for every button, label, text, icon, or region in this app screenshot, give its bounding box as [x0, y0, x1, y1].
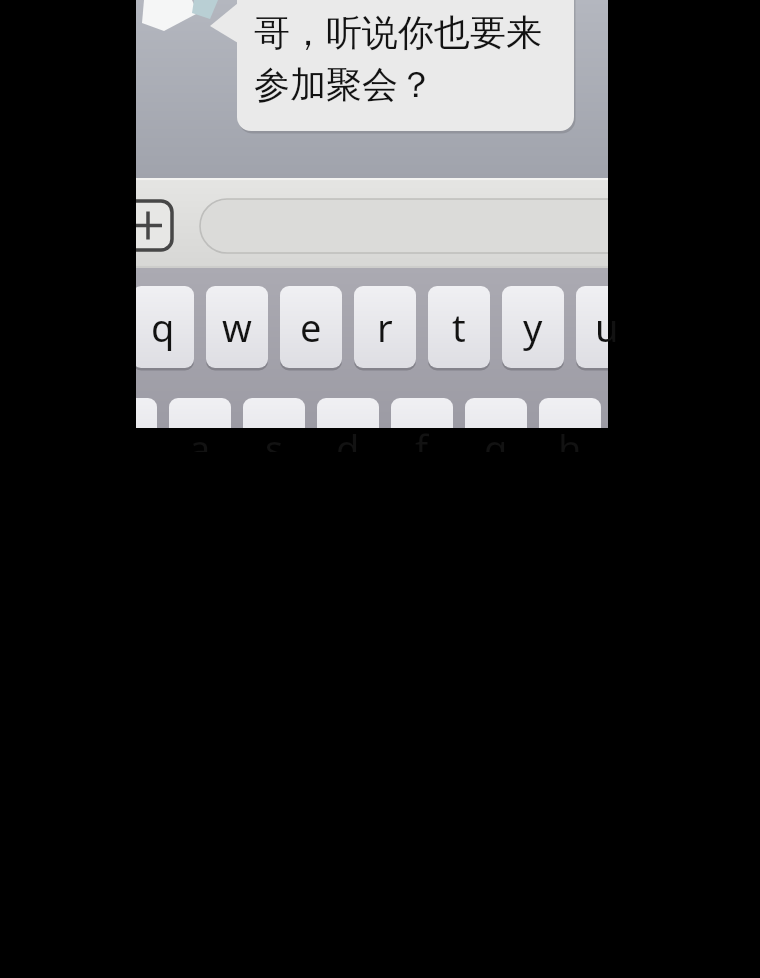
button[interactable]: Key a	[169, 398, 231, 428]
button[interactable]: Key e	[280, 286, 342, 368]
button[interactable]: Key f	[391, 398, 453, 428]
button[interactable]: Key s	[243, 398, 305, 428]
staticText: 哥，听说你也要来 参加聚会？	[254, 10, 542, 108]
staticText: y	[523, 301, 543, 353]
staticText: f	[415, 422, 429, 452]
staticText: t	[452, 301, 466, 353]
staticText: e	[300, 301, 322, 353]
button[interactable]: Key w	[206, 286, 268, 368]
button[interactable]: Key y	[502, 286, 564, 368]
staticText: r	[377, 301, 393, 353]
staticText: u	[595, 301, 619, 353]
button[interactable]: Key q	[132, 286, 194, 368]
staticText: h	[558, 422, 582, 452]
button[interactable]: Key h	[539, 398, 601, 428]
button[interactable]: Key g	[465, 398, 527, 428]
button[interactable]	[237, 0, 574, 131]
staticText: w	[222, 301, 252, 353]
staticText: d	[336, 422, 360, 452]
button[interactable]: Key t	[428, 286, 490, 368]
staticText: g	[484, 422, 508, 452]
button[interactable]: Key d	[317, 398, 379, 428]
staticText: q	[151, 301, 175, 353]
button[interactable]: Key r	[354, 286, 416, 368]
button[interactable]: Message input field	[200, 199, 608, 253]
button[interactable]: Key u	[576, 286, 638, 368]
staticText: s	[265, 422, 284, 452]
button[interactable]: Add attachment	[124, 201, 172, 250]
staticText: a	[189, 422, 211, 452]
